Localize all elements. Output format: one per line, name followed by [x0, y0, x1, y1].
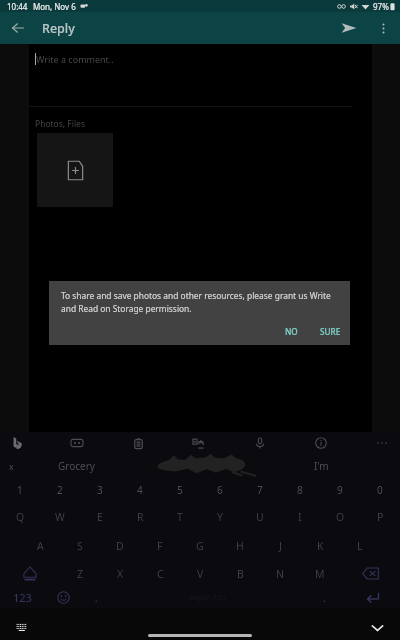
staticText: W: [55, 510, 65, 524]
staticText: Photos, Files: [35, 118, 85, 130]
button[interactable]: Add attachment: [37, 133, 113, 207]
button[interactable]: I'm: [271, 454, 371, 477]
button[interactable]: 4: [120, 477, 160, 502]
button[interactable]: Back: [0, 12, 36, 44]
button[interactable]: Keyboard: [12, 617, 32, 637]
button[interactable]: F: [140, 531, 180, 560]
button[interactable]: W: [40, 502, 80, 531]
button[interactable]: Send: [331, 12, 367, 44]
button[interactable]: Clipboard: [127, 432, 149, 454]
button[interactable]: More: [371, 432, 393, 454]
staticText: S: [77, 539, 83, 553]
button[interactable]: K: [300, 531, 340, 560]
button[interactable]: Shift: [0, 560, 60, 587]
button[interactable]: More options: [367, 12, 400, 44]
button[interactable]: Settings: [310, 432, 332, 454]
button[interactable]: X: [100, 560, 140, 587]
button[interactable]: 2: [40, 477, 80, 502]
button[interactable]: Hide keyboard: [367, 617, 387, 637]
button[interactable]: Enter: [344, 587, 400, 608]
button[interactable]: SURE: [313, 323, 348, 340]
button[interactable]: P: [360, 502, 400, 531]
staticText: B: [237, 567, 244, 581]
button[interactable]: C: [140, 560, 180, 587]
button[interactable]: Emoji: [44, 587, 82, 608]
staticText: Write a comment..: [36, 53, 114, 65]
staticText: 10:44: [7, 1, 28, 12]
button[interactable]: R: [120, 502, 160, 531]
button[interactable]: Dismiss suggestions: [2, 457, 20, 475]
button[interactable]: 123: [0, 587, 44, 608]
button[interactable]: Voice input: [249, 432, 271, 454]
staticText: V: [197, 567, 204, 581]
staticText: 1: [17, 483, 23, 497]
button[interactable]: Translate: [187, 432, 209, 454]
staticText: I'm: [314, 459, 329, 473]
button[interactable]: 7: [240, 477, 280, 502]
button[interactable]: 5: [160, 477, 200, 502]
button[interactable]: I: [280, 502, 320, 531]
button[interactable]: O: [320, 502, 360, 531]
button[interactable]: M: [300, 560, 340, 587]
button[interactable]: V: [180, 560, 220, 587]
button[interactable]: U: [240, 502, 280, 531]
button[interactable]: G: [180, 531, 220, 560]
button[interactable]: Grocery: [26, 454, 126, 477]
staticText: K: [317, 539, 324, 553]
button[interactable]: H: [220, 531, 260, 560]
staticText: M: [315, 567, 325, 581]
button[interactable]: NO: [278, 323, 305, 340]
button[interactable]: N: [260, 560, 300, 587]
button[interactable]: 9: [320, 477, 360, 502]
button[interactable]: Q: [0, 502, 40, 531]
button[interactable]: A: [20, 531, 60, 560]
button[interactable]: S: [60, 531, 100, 560]
staticText: Q: [16, 510, 25, 524]
staticText: 3: [97, 483, 103, 497]
staticText: X: [117, 567, 124, 581]
button[interactable]: Y: [200, 502, 240, 531]
button[interactable]: 6: [200, 477, 240, 502]
staticText: To share and save photos and other resou…: [61, 290, 339, 315]
staticText: E: [97, 510, 103, 524]
button[interactable]: 0: [360, 477, 400, 502]
button[interactable]: D: [100, 531, 140, 560]
button[interactable]: Bing search: [6, 432, 28, 454]
staticText: I: [298, 510, 302, 524]
button[interactable]: 1: [0, 477, 40, 502]
button[interactable]: 8: [280, 477, 320, 502]
staticText: Reply: [42, 20, 75, 37]
staticText: N: [276, 567, 284, 581]
button[interactable]: Stickers: [66, 432, 88, 454]
staticText: G: [196, 539, 204, 553]
staticText: D: [116, 539, 124, 553]
staticText: R: [137, 510, 144, 524]
staticText: 123: [13, 590, 32, 605]
staticText: 5: [177, 483, 183, 497]
button[interactable]: Backspace: [340, 560, 400, 587]
staticText: F: [157, 539, 163, 553]
staticText: A: [37, 539, 44, 553]
staticText: 7: [257, 483, 263, 497]
staticText: 2: [57, 483, 63, 497]
staticText: ,: [95, 591, 98, 605]
staticText: Z: [77, 567, 84, 581]
staticText: 9: [337, 483, 343, 497]
staticText: P: [377, 510, 384, 524]
button[interactable]: Z: [60, 560, 100, 587]
button[interactable]: E: [80, 502, 120, 531]
staticText: Y: [217, 510, 223, 524]
button[interactable]: 3: [80, 477, 120, 502]
button[interactable]: L: [340, 531, 380, 560]
button[interactable]: B: [220, 560, 260, 587]
button[interactable]: T: [160, 502, 200, 531]
staticText: T: [177, 510, 183, 524]
staticText: .: [323, 590, 326, 605]
staticText: 8: [297, 483, 303, 497]
button[interactable]: J: [260, 531, 300, 560]
staticText: Mon, Nov 6: [33, 1, 76, 12]
